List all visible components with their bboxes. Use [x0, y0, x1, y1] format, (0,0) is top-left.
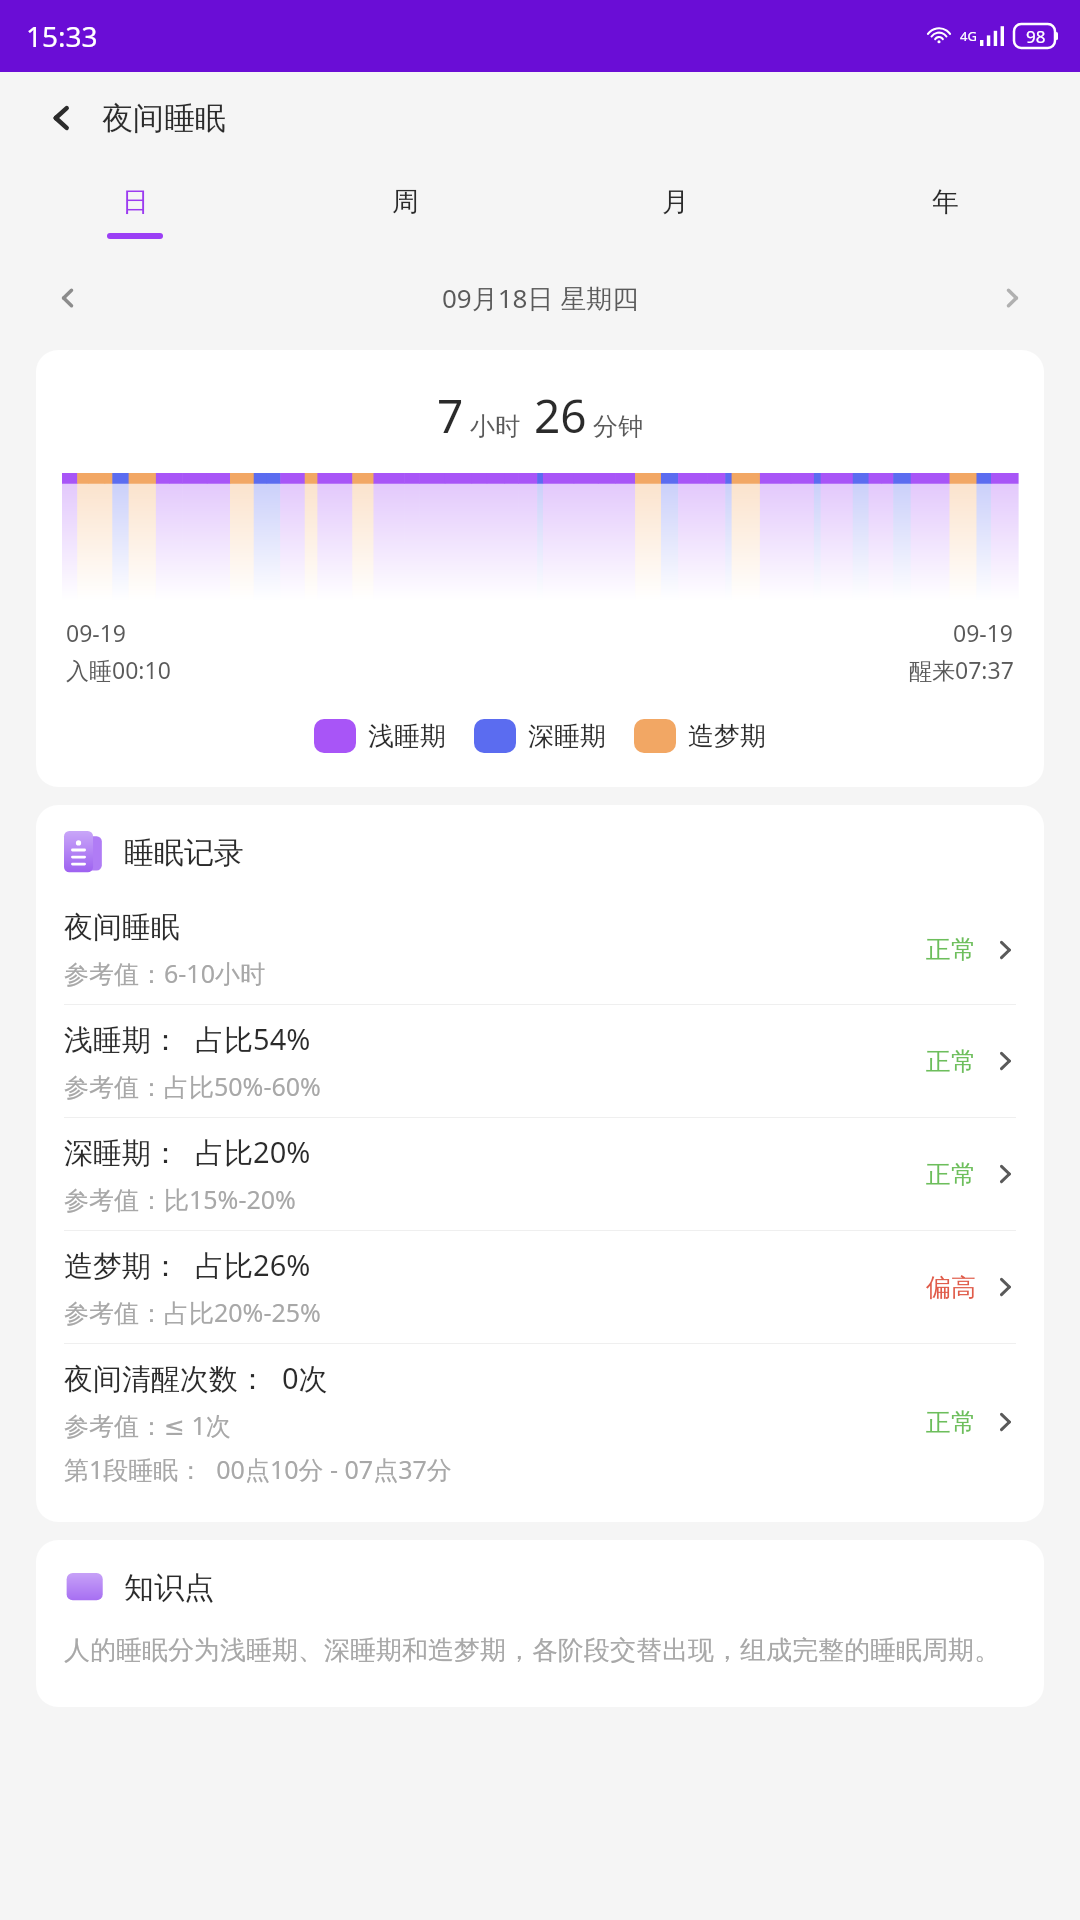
- staticText: 参考值：≤ 1次: [64, 1408, 231, 1442]
- staticText: 月: [662, 185, 689, 219]
- staticText: 第1段睡眠： 00点10分 - 07点37分: [64, 1452, 452, 1486]
- staticText: 睡眠记录: [124, 834, 244, 872]
- staticText: 入睡00:10: [66, 654, 171, 685]
- button[interactable]: 深睡期： 占比20%: [64, 1118, 1016, 1230]
- staticText: 日: [122, 185, 149, 219]
- staticText: 分钟: [593, 411, 643, 442]
- button[interactable]: 周: [270, 164, 540, 260]
- button[interactable]: 浅睡期： 占比54%: [64, 1005, 1016, 1117]
- staticText: 09月18日 星期四: [442, 280, 639, 316]
- staticText: 浅睡期： 占比54%: [64, 1019, 311, 1059]
- staticText: 偏高: [926, 1272, 976, 1303]
- staticText: 15:33: [26, 17, 98, 55]
- staticText: 夜间睡眠: [102, 99, 226, 138]
- button[interactable]: Previous day: [40, 270, 96, 326]
- button[interactable]: 造梦期： 占比26%: [64, 1231, 1016, 1343]
- staticText: 年: [932, 185, 959, 219]
- staticText: 夜间清醒次数： 0次: [64, 1358, 328, 1398]
- staticText: 4G: [960, 27, 977, 45]
- staticText: 正常: [926, 1046, 976, 1077]
- staticText: 09-19: [953, 617, 1014, 648]
- staticText: 参考值：占比50%-60%: [64, 1069, 321, 1103]
- staticText: 参考值：6-10小时: [64, 956, 265, 990]
- button[interactable]: 年: [810, 164, 1080, 260]
- staticText: 知识点: [124, 1569, 214, 1607]
- staticText: 造梦期: [688, 720, 766, 753]
- staticText: 造梦期： 占比26%: [64, 1245, 311, 1285]
- button[interactable]: 夜间清醒次数： 0次: [64, 1344, 1016, 1500]
- staticText: 98: [1026, 25, 1046, 48]
- button[interactable]: Next day: [984, 270, 1040, 326]
- staticText: 小时: [470, 411, 520, 442]
- button[interactable]: 月: [540, 164, 810, 260]
- staticText: 夜间睡眠: [64, 909, 180, 946]
- staticText: 正常: [926, 1407, 976, 1438]
- staticText: 正常: [926, 934, 976, 965]
- staticText: 周: [392, 185, 419, 219]
- staticText: 深睡期： 占比20%: [64, 1132, 311, 1172]
- staticText: 26: [534, 384, 587, 447]
- staticText: 人的睡眠分为浅睡期、深睡期和造梦期，各阶段交替出现，组成完整的睡眠周期。: [64, 1634, 1000, 1667]
- staticText: 参考值：比15%-20%: [64, 1182, 296, 1216]
- button[interactable]: 夜间睡眠: [64, 895, 1016, 1004]
- button[interactable]: Back: [36, 92, 88, 144]
- button[interactable]: 日: [0, 164, 270, 260]
- staticText: 参考值：占比20%-25%: [64, 1295, 321, 1329]
- staticText: 深睡期: [528, 720, 606, 753]
- staticText: 7: [437, 384, 464, 447]
- staticText: 正常: [926, 1159, 976, 1190]
- staticText: 浅睡期: [368, 720, 446, 753]
- staticText: 09-19: [66, 617, 127, 648]
- staticText: 醒来07:37: [909, 654, 1014, 685]
